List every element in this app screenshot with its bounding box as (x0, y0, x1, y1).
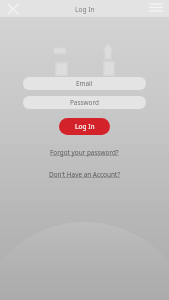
button[interactable]: Log In (59, 118, 110, 135)
button[interactable]: Close (8, 4, 18, 14)
staticText: Email (76, 79, 93, 88)
button[interactable]: Don't Have an Account? (49, 170, 120, 179)
staticText: Password (70, 98, 99, 107)
staticText: Log In (75, 5, 95, 14)
button[interactable]: Email (23, 77, 146, 90)
button[interactable]: Menu (149, 4, 163, 11)
button[interactable]: Forgot your password? (50, 148, 119, 157)
staticText: Log In (75, 122, 95, 131)
button[interactable]: Password (23, 96, 146, 109)
